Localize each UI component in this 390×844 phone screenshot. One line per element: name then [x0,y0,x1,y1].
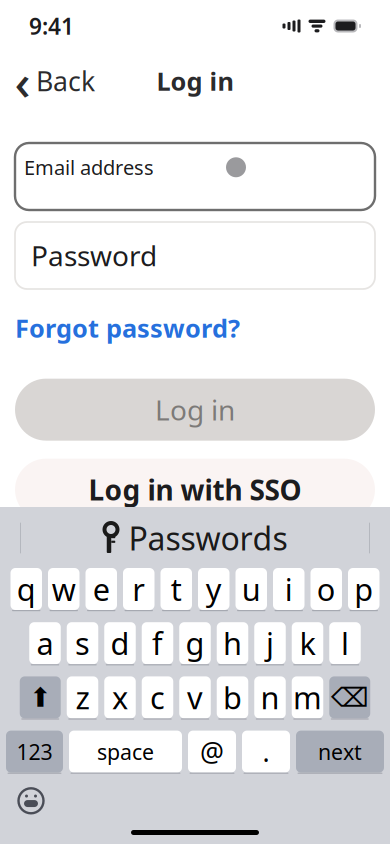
staticText: n [260,677,279,718]
button[interactable]: y [198,568,229,611]
staticText: m [293,677,322,718]
staticText: Forgot password? [15,311,240,345]
staticText: g [185,623,204,663]
staticText: Passwords [128,517,287,559]
button[interactable]: j [254,622,286,665]
staticText: 123 [16,737,52,766]
button[interactable]: x [104,676,136,720]
button[interactable]: Continue with Facebook [129,596,187,654]
button[interactable]: Shift [20,676,61,720]
staticText: . [262,734,269,769]
button[interactable]: v [179,676,211,720]
staticText: p [354,569,373,609]
staticText: b [223,677,242,718]
button[interactable]: Forgot password? [15,305,240,351]
staticText: @ [200,734,224,769]
button[interactable]: Email address [15,143,375,210]
staticText: h [223,623,242,663]
button[interactable]: d [104,622,136,665]
button[interactable]: b [217,676,248,720]
staticText: ‹ [14,48,30,114]
staticText: v [187,677,203,718]
button[interactable]: r [123,568,154,611]
staticText: r [132,569,145,609]
staticText: Password [31,237,157,274]
staticText: c [150,677,165,718]
staticText: i [285,569,293,609]
button[interactable]: space [69,731,182,774]
staticText: Email address [24,154,154,181]
button[interactable]: s [67,622,98,665]
button[interactable]: 123 [6,731,63,774]
button[interactable]: f [142,622,173,665]
button[interactable]: p [348,568,379,611]
button[interactable]: k [292,622,323,665]
staticText: t [171,569,182,609]
button[interactable]: o [310,568,342,611]
button[interactable]: Log in [15,379,375,441]
button[interactable]: Continue with Google [203,596,261,654]
button[interactable]: e [85,568,117,611]
button[interactable]: @ [188,731,236,774]
button[interactable]: Log in with SSO [15,459,375,521]
button[interactable]: t [160,568,192,611]
staticText: Log in [155,391,235,428]
button[interactable]: i [273,568,304,611]
staticText: w [52,569,76,609]
staticText: f [152,623,163,663]
staticText: u [242,569,261,609]
button[interactable]: m [292,676,323,720]
staticText: e [93,569,110,609]
staticText: j [266,623,274,663]
staticText: k [299,623,315,663]
button[interactable]: ‹ [8,57,103,105]
button[interactable]: n [254,676,286,720]
button[interactable]: a [29,622,61,665]
staticText: Back [36,63,95,99]
staticText: o [317,569,336,609]
staticText: 9:41 [29,11,74,41]
staticText: space [97,737,154,766]
button[interactable]: Delete [329,676,370,720]
button[interactable]: . [242,731,290,774]
button[interactable]: c [142,676,173,720]
button[interactable]: Continue with WeChat [278,596,336,654]
staticText: s [75,623,90,663]
staticText: next [318,737,362,766]
staticText: z [75,677,89,718]
button[interactable]: Emoji keyboard [12,782,50,820]
button[interactable]: g [179,622,211,665]
staticText: ⌫ [331,682,369,713]
staticText: a [36,623,53,663]
staticText: q [17,569,36,609]
staticText: d [110,623,129,663]
staticText: y [206,569,222,609]
button[interactable]: Passwords [88,512,301,564]
button[interactable]: h [217,622,248,665]
button[interactable]: l [329,622,361,665]
staticText: l [341,623,349,663]
staticText: ⬆ [29,682,51,713]
staticText: Log in [156,64,233,98]
button[interactable]: u [235,568,267,611]
staticText: x [112,677,128,718]
button[interactable]: z [67,676,98,720]
staticText: Log in with SSO [88,471,301,508]
button[interactable]: next [296,731,384,774]
button[interactable]: w [48,568,79,611]
staticText: or [185,547,205,573]
button[interactable]: q [10,568,42,611]
button[interactable]: Password [15,222,375,289]
button[interactable]: Continue with Apple [54,596,112,654]
